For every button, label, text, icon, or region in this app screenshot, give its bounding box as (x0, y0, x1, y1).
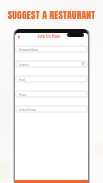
button[interactable]: Phone (16, 91, 87, 97)
button[interactable]: Contact Person (16, 106, 87, 112)
staticText: Join Us Now (37, 34, 60, 39)
button[interactable]: Restaurant Name (16, 46, 87, 52)
staticText: Contact Person (19, 108, 37, 111)
staticText: Location (19, 63, 29, 66)
button[interactable]: Email (16, 76, 87, 82)
staticText: Email (19, 78, 26, 81)
button[interactable]: Location (16, 61, 87, 67)
staticText: Phone (19, 93, 26, 96)
button[interactable]: Back (15, 33, 23, 41)
staticText: SUGGEST A RESTAURANT (0, 8, 103, 22)
staticText: Restaurant Name (19, 48, 39, 51)
